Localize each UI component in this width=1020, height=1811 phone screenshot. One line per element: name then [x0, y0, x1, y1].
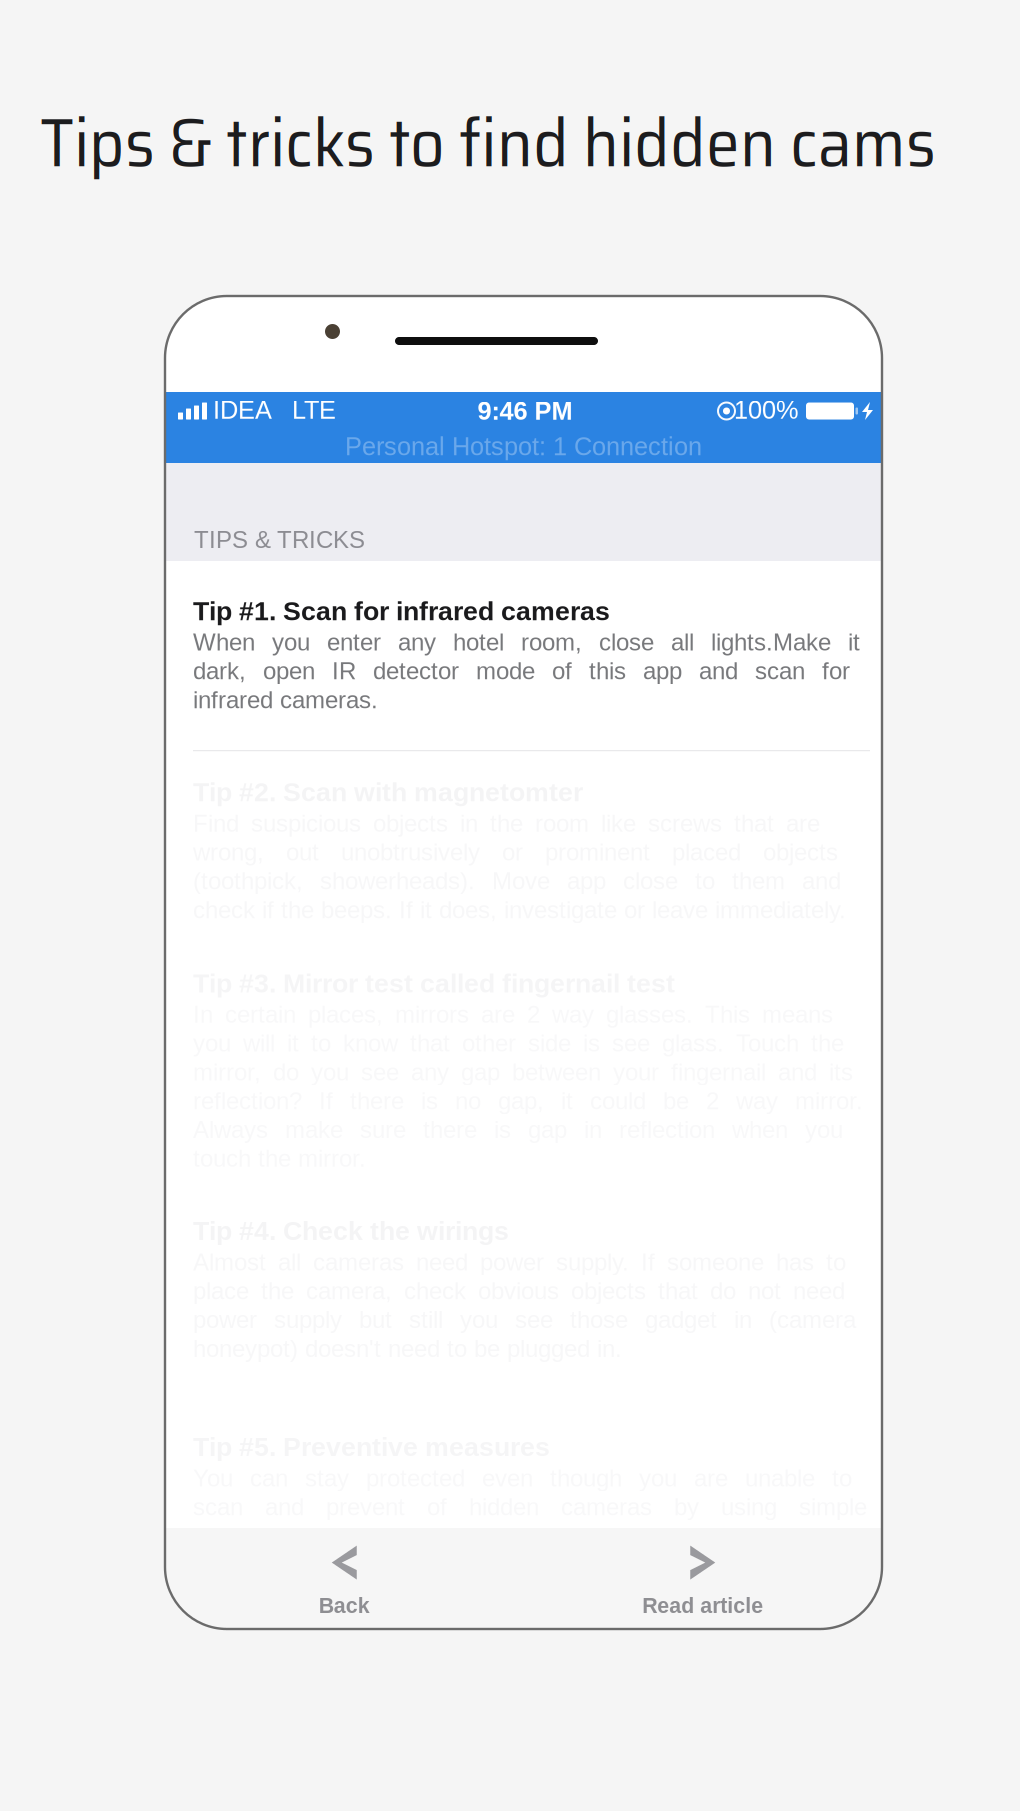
staticText: Tip #5. Preventive measures — [193, 1432, 550, 1462]
staticText: IDEA — [213, 396, 272, 424]
staticText: TIPS & TRICKS — [194, 526, 365, 553]
staticText: Read article — [642, 1594, 763, 1617]
staticText: steps. — [193, 1522, 257, 1549]
staticText: infrared cameras. — [193, 686, 378, 713]
staticText: 100% — [734, 396, 799, 424]
staticText: When you enter any hotel room, close all… — [193, 629, 860, 656]
staticText: dark, open IR detector mode of this app … — [193, 658, 850, 684]
staticText: Tip #4. Check the wirings — [193, 1216, 509, 1246]
staticText: Tips & tricks to find hidden cams — [40, 89, 936, 196]
button[interactable]: Read article — [523, 1535, 882, 1622]
button[interactable]: Back — [165, 1535, 523, 1622]
staticText: Tip #2. Scan with magnetomter — [193, 777, 583, 807]
staticText: Tip #3. Mirror test called fingernail te… — [193, 968, 675, 998]
staticText: Back — [319, 1594, 370, 1617]
staticText: 9:46 PM — [477, 397, 572, 425]
staticText: LTE — [292, 396, 336, 424]
staticText: Personal Hotspot: 1 Connection — [345, 432, 702, 461]
staticText: Tip #1. Scan for infrared cameras — [193, 596, 610, 626]
